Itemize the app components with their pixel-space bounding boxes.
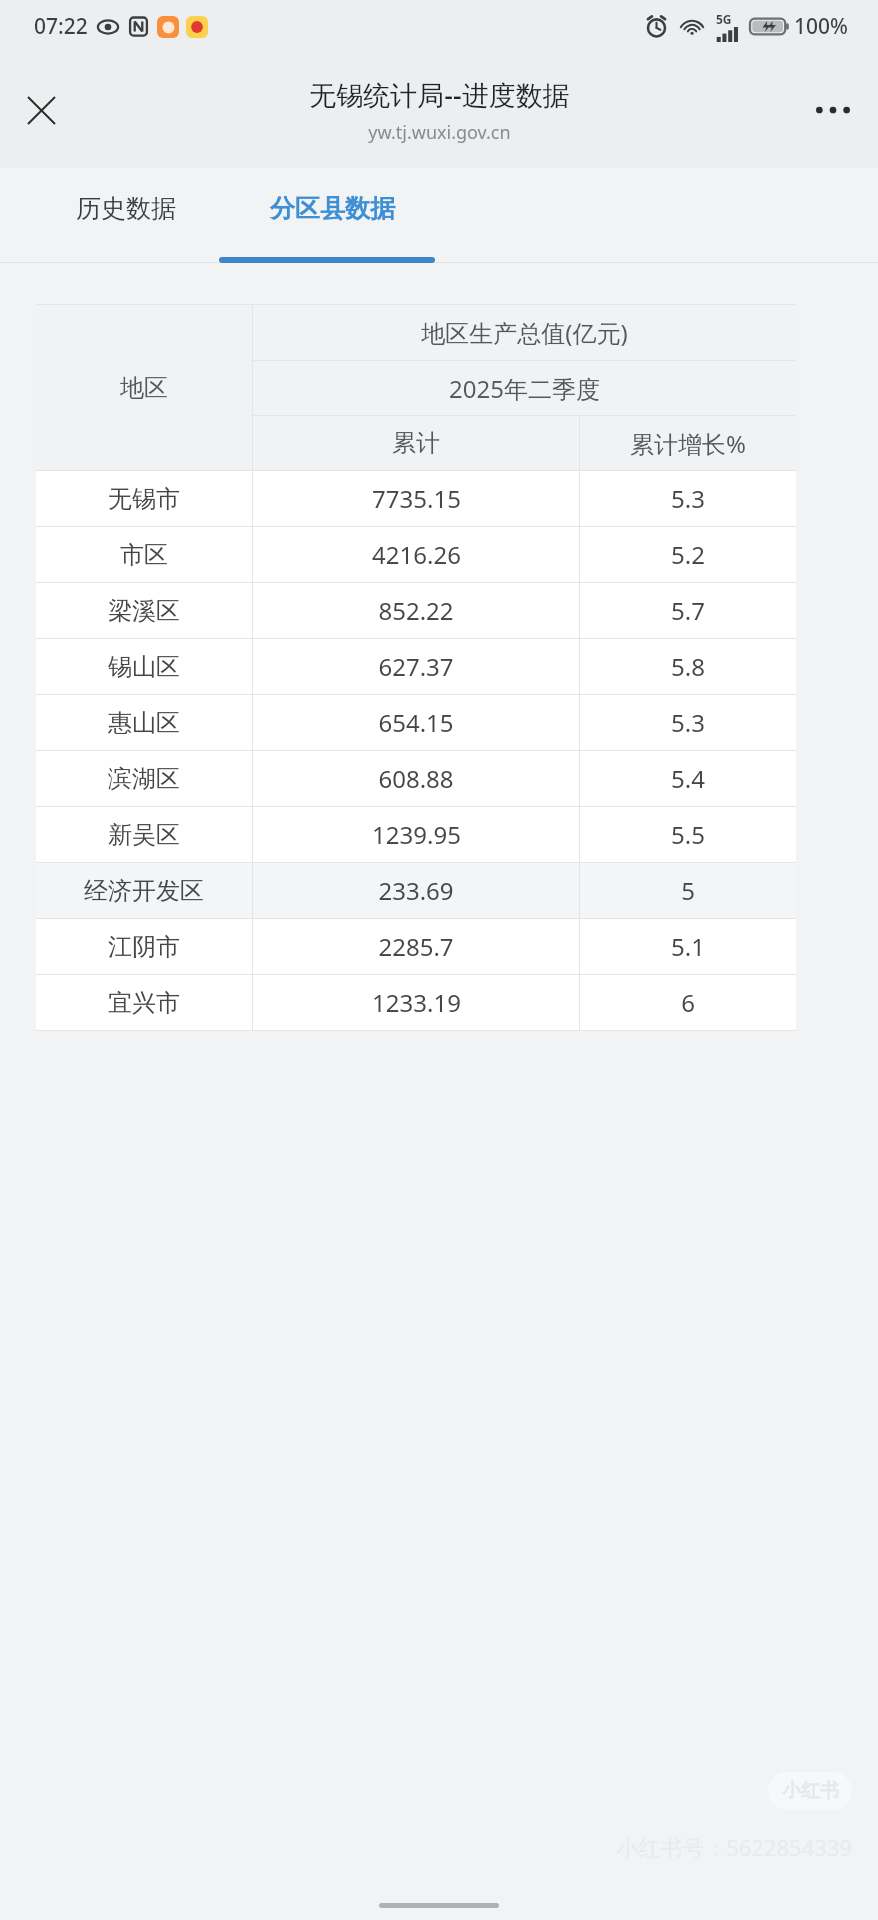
- button[interactable]: 经济开发区: [36, 863, 796, 918]
- button[interactable]: 锡山区: [36, 639, 796, 694]
- staticText: 852.22: [378, 594, 454, 627]
- staticText: 小红书: [782, 1779, 839, 1803]
- staticText: 梁溪区: [108, 596, 180, 626]
- staticText: 锡山区: [108, 652, 180, 682]
- button[interactable]: 历史数据: [22, 168, 229, 263]
- staticText: 5.3: [671, 482, 705, 515]
- staticText: 江阴市: [108, 932, 180, 962]
- staticText: 608.88: [378, 762, 454, 795]
- staticText: 地区: [120, 373, 168, 403]
- staticText: 经济开发区: [84, 876, 204, 906]
- button[interactable]: 分区县数据: [229, 168, 436, 263]
- staticText: 地区生产总值(亿元): [421, 316, 628, 349]
- staticText: 5.3: [671, 706, 705, 739]
- staticText: 5.1: [671, 930, 705, 963]
- staticText: 7735.15: [372, 482, 461, 515]
- button[interactable]: 梁溪区: [36, 583, 796, 638]
- staticText: 市区: [120, 540, 168, 570]
- button[interactable]: 惠山区: [36, 695, 796, 750]
- staticText: 5.5: [671, 818, 705, 851]
- staticText: 5.8: [671, 650, 705, 683]
- staticText: 滨湖区: [108, 764, 180, 794]
- staticText: 627.37: [378, 650, 454, 683]
- staticText: 5.4: [671, 762, 705, 795]
- staticText: 2285.7: [378, 930, 454, 963]
- button[interactable]: 新吴区: [36, 807, 796, 862]
- staticText: 4216.26: [372, 538, 461, 571]
- staticText: 5.2: [671, 538, 705, 571]
- button[interactable]: Close: [10, 79, 72, 141]
- staticText: 5G: [716, 11, 732, 27]
- button[interactable]: More options: [802, 79, 864, 141]
- staticText: 无锡市: [108, 484, 180, 514]
- staticText: 6: [681, 986, 695, 1019]
- staticText: 654.15: [378, 706, 454, 739]
- staticText: 累计增长%: [630, 427, 746, 460]
- staticText: 历史数据: [76, 193, 176, 224]
- staticText: 小红书号：5622854339: [616, 1832, 852, 1862]
- staticText: 07:22: [34, 12, 88, 41]
- staticText: 惠山区: [108, 708, 180, 738]
- staticText: 宜兴市: [108, 988, 180, 1018]
- staticText: 1233.19: [372, 986, 461, 1019]
- button[interactable]: 市区: [36, 527, 796, 582]
- staticText: 5: [681, 874, 695, 907]
- staticText: 分区县数据: [270, 193, 395, 224]
- button[interactable]: 宜兴市: [36, 975, 796, 1030]
- staticText: 无锡统计局--进度数据: [309, 76, 570, 113]
- staticText: 新吴区: [108, 820, 180, 850]
- staticText: 233.69: [378, 874, 454, 907]
- staticText: 5.7: [671, 594, 705, 627]
- button[interactable]: 无锡市: [36, 471, 796, 526]
- staticText: 1239.95: [372, 818, 461, 851]
- button[interactable]: 江阴市: [36, 919, 796, 974]
- button[interactable]: 滨湖区: [36, 751, 796, 806]
- staticText: 2025年二季度: [449, 372, 600, 405]
- staticText: yw.tj.wuxi.gov.cn: [368, 120, 511, 145]
- staticText: 累计: [392, 428, 440, 458]
- staticText: 100%: [794, 12, 848, 41]
